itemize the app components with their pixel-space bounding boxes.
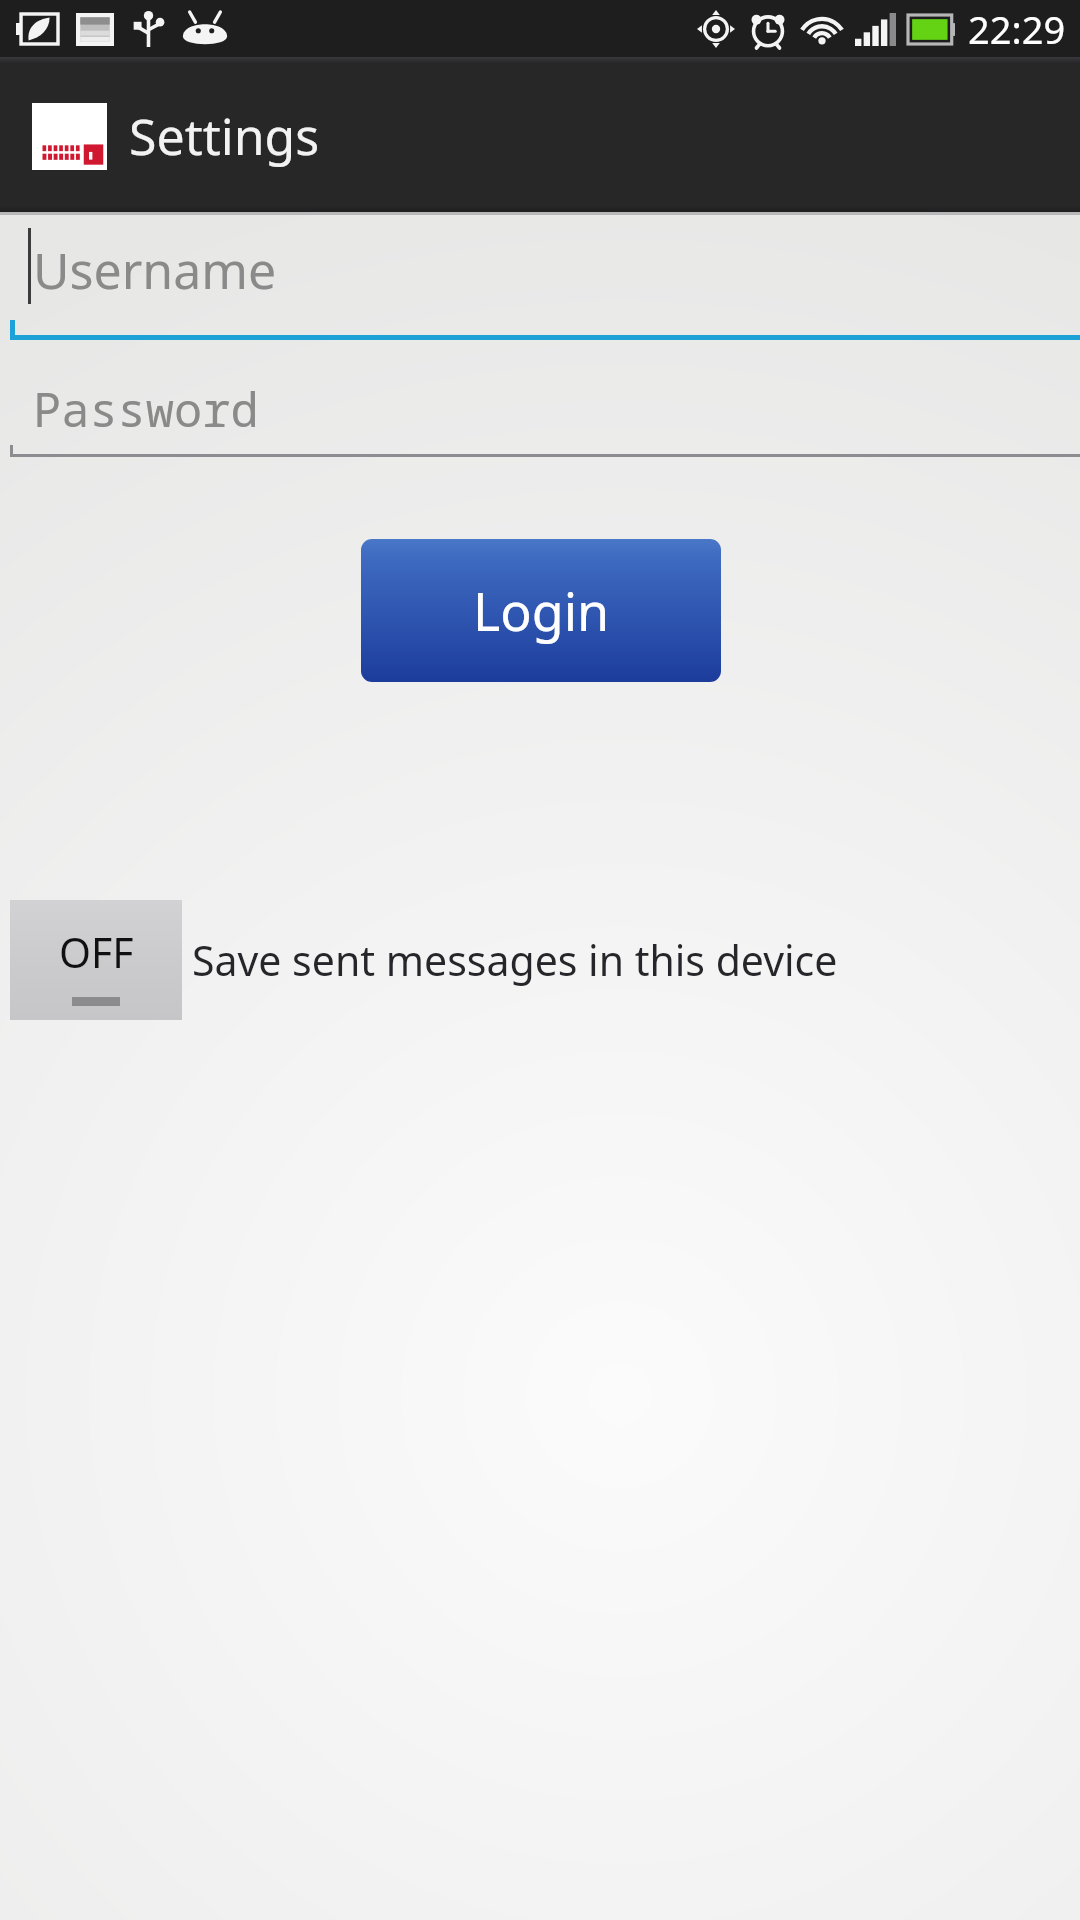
staticText: Settings: [129, 102, 320, 170]
button[interactable]: Username: [0, 215, 1080, 340]
staticText: Login: [473, 575, 610, 646]
button[interactable]: Save sent messages toggle, OFF: [10, 900, 182, 1020]
staticText: Save sent messages in this device: [192, 932, 838, 988]
button[interactable]: Login: [361, 539, 721, 682]
button[interactable]: Password: [0, 373, 1080, 457]
staticText: OFF: [59, 924, 134, 980]
staticText: 22:29: [968, 3, 1066, 55]
staticText: Password: [33, 377, 259, 441]
staticText: Username: [33, 236, 277, 304]
